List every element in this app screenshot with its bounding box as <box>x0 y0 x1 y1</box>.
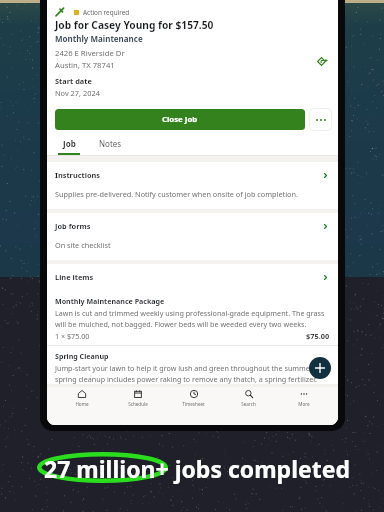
button[interactable]: Job forms <box>47 213 338 231</box>
button[interactable]: Add <box>309 357 331 379</box>
button[interactable]: Get directions <box>316 56 326 66</box>
button[interactable]: Instructions <box>47 162 338 180</box>
staticText: Line items <box>55 272 94 282</box>
staticText: Start date <box>55 76 92 86</box>
button[interactable]: Search <box>221 390 276 407</box>
button[interactable]: Job <box>51 138 87 155</box>
staticText: Timesheet <box>182 401 205 407</box>
staticText: Nov 27, 2024 <box>55 88 100 98</box>
staticText: Action required <box>83 8 130 17</box>
staticText: Job forms <box>55 221 91 231</box>
button[interactable]: Notes <box>92 138 129 149</box>
staticText: Home <box>75 401 89 407</box>
staticText: Close Job <box>162 114 198 125</box>
staticText: Supplies pre-delivered. Notify customer … <box>55 189 298 199</box>
button[interactable]: Close Job <box>55 109 305 130</box>
staticText: Instructions <box>55 170 101 180</box>
button[interactable]: More <box>276 390 331 407</box>
staticText: Lawn is cut and trimmed weekly using pro… <box>55 308 330 329</box>
staticText: Monthly Maintenance <box>55 33 143 44</box>
staticText: Job <box>63 138 76 149</box>
button[interactable]: Line items <box>47 264 338 282</box>
button[interactable]: Schedule <box>110 390 166 407</box>
staticText: Schedule <box>128 401 148 407</box>
button[interactable]: Home <box>54 390 110 407</box>
staticText: 1 × $75.00 <box>55 331 90 341</box>
staticText: Spring Cleanup <box>55 351 109 361</box>
staticText: Search <box>241 401 256 407</box>
button[interactable]: More actions <box>309 108 332 131</box>
staticText: Notes <box>99 138 122 149</box>
staticText: On site checklist <box>55 240 111 250</box>
staticText: Austin, TX 78741 <box>55 60 115 70</box>
staticText: Jump-start your lawn to help it grow lus… <box>55 363 330 384</box>
staticText: Monthly Maintenance Package <box>55 296 165 306</box>
button[interactable]: Timesheet <box>166 390 221 407</box>
staticText: 2426 E Riverside Dr <box>55 48 125 58</box>
staticText: $75.00 <box>306 331 330 341</box>
staticText: Job for Casey Young for $157.50 <box>55 18 214 32</box>
staticText: More <box>298 401 310 407</box>
staticText: 27 million+ jobs completed <box>44 453 350 484</box>
